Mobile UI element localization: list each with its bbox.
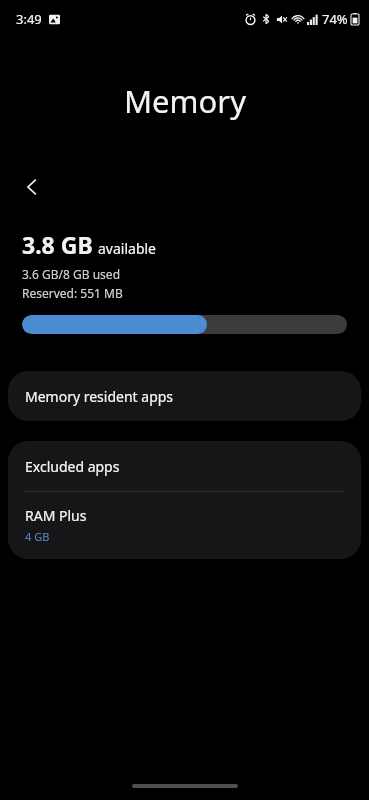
staticText: 74% — [322, 10, 348, 28]
button[interactable]: RAM Plus — [8, 492, 361, 559]
staticText: 4 GB — [25, 529, 50, 544]
staticText: Excluded apps — [25, 457, 120, 476]
staticText: Memory resident apps — [25, 387, 174, 406]
staticText: 3:49 — [16, 10, 42, 28]
staticText: available — [98, 239, 157, 258]
staticText: 3.6 GB/8 GB used — [22, 266, 121, 282]
button[interactable]: Memory resident apps — [8, 371, 361, 421]
staticText: RAM Plus — [25, 506, 87, 525]
button[interactable]: Excluded apps — [8, 441, 361, 491]
staticText: Memory — [124, 80, 246, 122]
staticText: 3.8 GB — [22, 229, 93, 260]
button[interactable]: Back — [8, 163, 56, 211]
staticText: Reserved: 551 MB — [22, 285, 123, 301]
